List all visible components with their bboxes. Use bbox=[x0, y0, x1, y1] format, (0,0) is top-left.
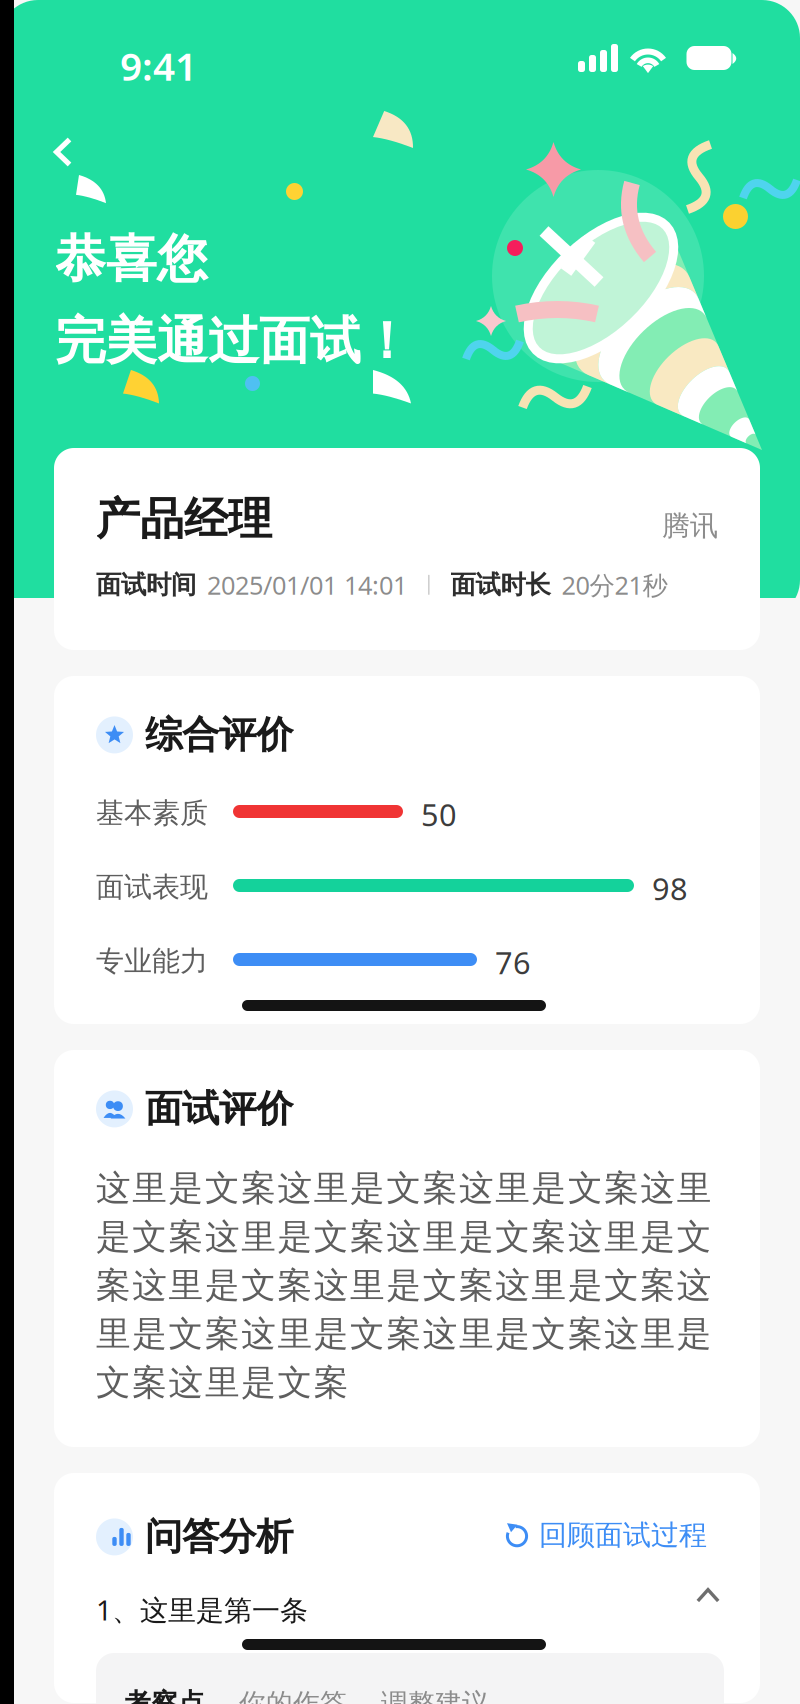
staticText: 专业能力 bbox=[96, 944, 208, 978]
staticText: 恭喜您 bbox=[55, 228, 208, 290]
staticText: 问答分析 bbox=[145, 1514, 293, 1560]
button[interactable]: 收起 bbox=[684, 1573, 732, 1617]
staticText: 9:41 bbox=[120, 40, 197, 91]
staticText: 这里是文案这里是文案这里是文案这里是文案这里是文案这里是文案这里是文案这里是文案… bbox=[96, 1167, 712, 1404]
staticText: 面试时长 bbox=[451, 569, 551, 600]
staticText: 2025/01/01 14:01 bbox=[200, 568, 407, 602]
staticText: 面试评价 bbox=[145, 1086, 293, 1132]
staticText: 76 bbox=[495, 942, 531, 983]
staticText: 考察点 bbox=[124, 1687, 205, 1704]
button[interactable]: 返回 bbox=[34, 120, 98, 184]
staticText: 1、这里是第一条 bbox=[96, 1591, 308, 1628]
staticText: 你的作答 bbox=[239, 1687, 347, 1704]
button[interactable]: 回顾面试过程 bbox=[504, 1512, 707, 1558]
staticText: 调整建议 bbox=[381, 1687, 489, 1704]
staticText: 20分21秒 bbox=[555, 568, 668, 602]
staticText: 98 bbox=[652, 868, 688, 909]
staticText: 面试时间 bbox=[96, 569, 196, 600]
staticText: 基本素质 bbox=[96, 796, 208, 830]
staticText: 产品经理 bbox=[96, 492, 272, 546]
staticText: 综合评价 bbox=[145, 712, 293, 758]
staticText: 回顾面试过程 bbox=[539, 1518, 707, 1552]
staticText: 腾讯 bbox=[662, 509, 718, 543]
staticText: 50 bbox=[421, 794, 457, 835]
staticText: 完美通过面试！ bbox=[55, 310, 412, 372]
staticText: 面试表现 bbox=[96, 870, 208, 904]
